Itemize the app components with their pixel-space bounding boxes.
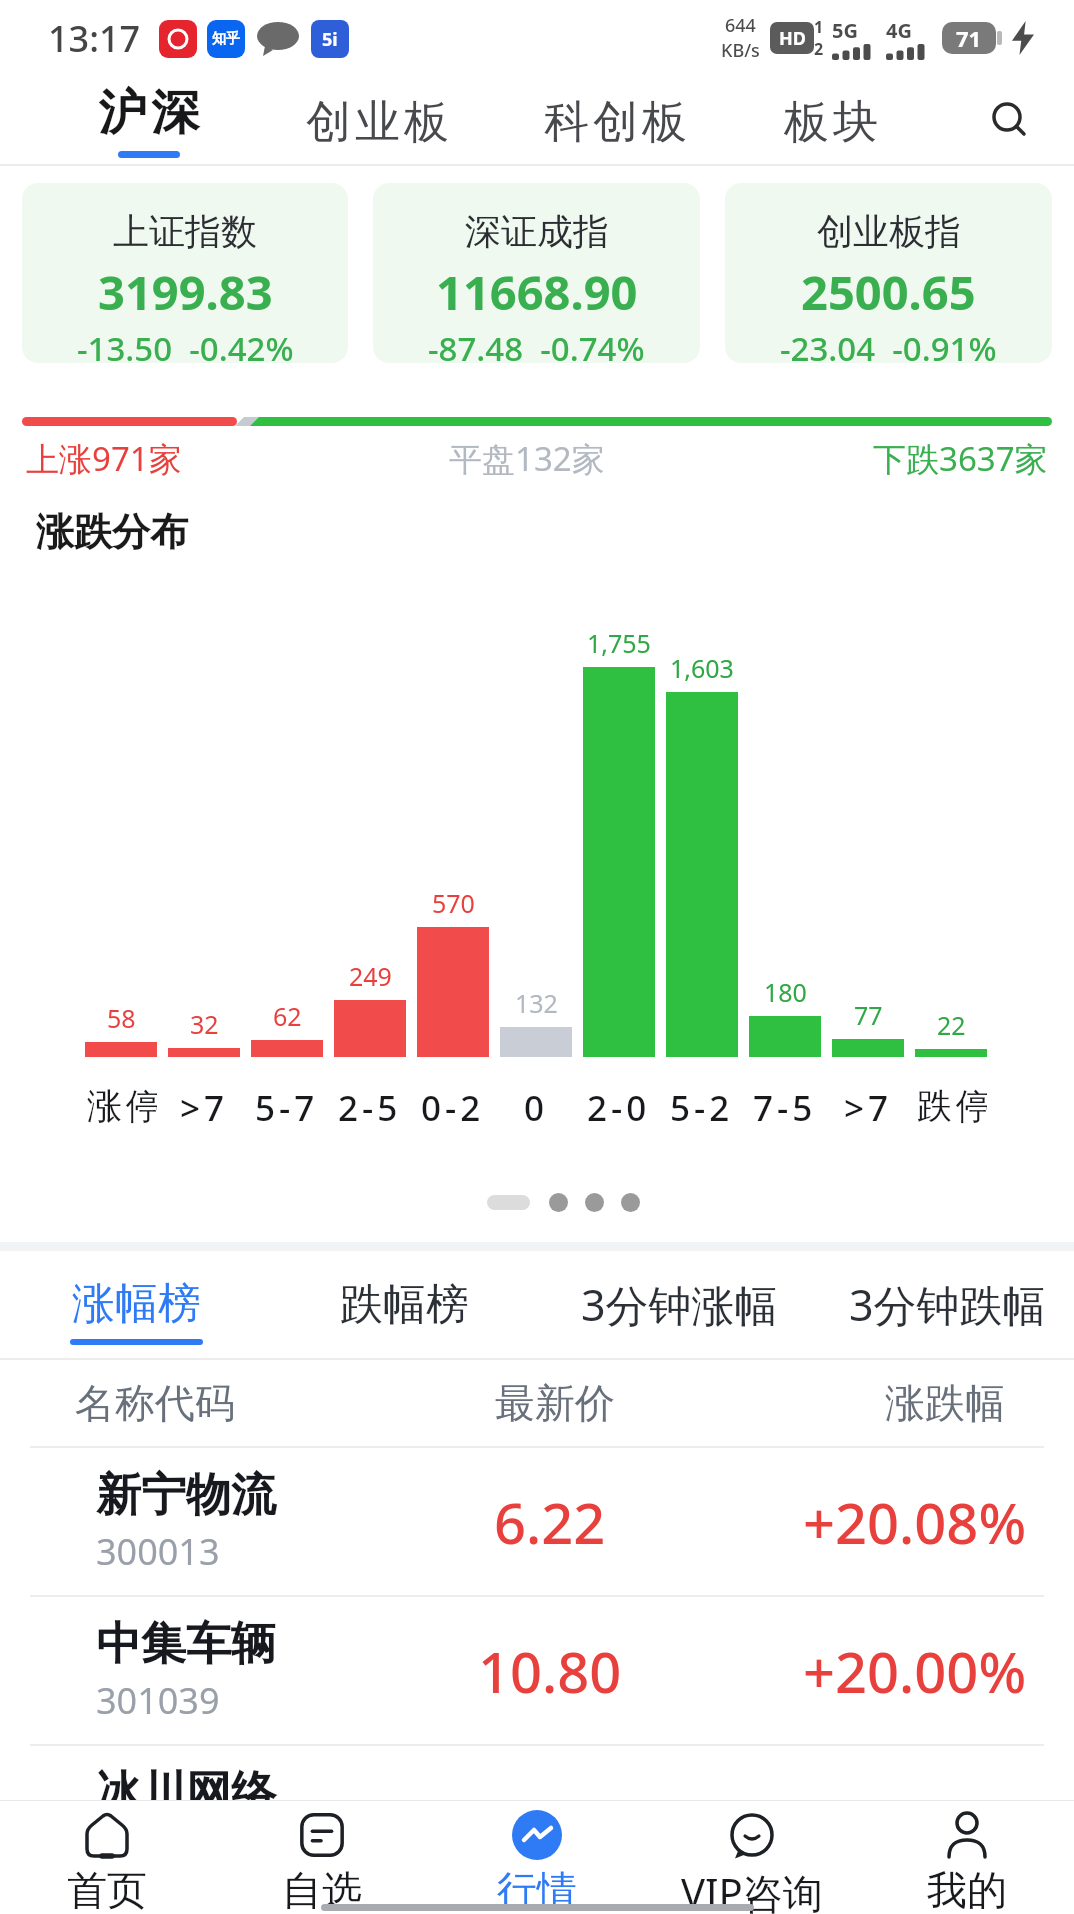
button[interactable]: 涨幅榜	[70, 1265, 203, 1345]
staticText: 冰川网络	[96, 1765, 276, 1822]
button[interactable]: 中集车辆	[0, 1597, 1074, 1744]
staticText: -23.04 -0.91%	[780, 326, 997, 363]
staticText: 我的	[927, 1865, 1007, 1914]
staticText: 300013	[96, 1527, 220, 1576]
staticText: 深证成指	[465, 209, 609, 254]
staticText: 首页	[67, 1865, 147, 1914]
staticText: 沪深	[96, 83, 202, 143]
staticText: 5-7	[255, 1084, 319, 1132]
staticText: 1	[814, 16, 824, 38]
staticText: 平盘132家	[449, 436, 605, 481]
staticText: 2-5	[338, 1084, 402, 1132]
staticText: 71	[956, 23, 982, 53]
staticText: 上证指数	[113, 209, 257, 254]
staticText: 知乎	[212, 30, 240, 48]
staticText: 涨跌分布	[36, 508, 188, 556]
staticText: 32	[190, 1007, 219, 1041]
staticText: 58	[107, 1001, 136, 1035]
staticText: 4G	[886, 17, 912, 44]
staticText: 下跌3637家	[873, 436, 1048, 481]
button[interactable]: VIP咨询	[644, 1801, 859, 1914]
staticText: 中集车辆	[96, 1616, 276, 1673]
staticText: 最新价	[495, 1378, 615, 1428]
staticText: 25.10	[478, 1808, 622, 1884]
staticText: 跌停	[915, 1084, 987, 1128]
staticText: 2500.65	[801, 260, 976, 324]
staticText: 上涨971家	[26, 436, 182, 481]
staticText: 3199.83	[98, 260, 273, 324]
staticText: +20.08%	[803, 1484, 1027, 1560]
button[interactable]: 板块	[782, 90, 880, 151]
button[interactable]: 冰川网络	[0, 1746, 1074, 1893]
staticText: 11668.90	[436, 260, 638, 324]
button[interactable]	[986, 96, 1034, 144]
staticText: 0	[524, 1084, 549, 1132]
button[interactable]: 新宁物流	[0, 1448, 1074, 1595]
button[interactable]: 我的	[859, 1801, 1074, 1914]
staticText: 行情	[497, 1865, 577, 1914]
staticText: >7	[180, 1084, 229, 1132]
staticText: 涨幅榜	[72, 1277, 201, 1331]
button[interactable]: 创业板	[304, 90, 451, 151]
button[interactable]: 首页	[0, 1801, 214, 1914]
staticText: 创业板指	[817, 209, 961, 254]
staticText: 5G	[832, 17, 858, 44]
staticText: >7	[844, 1084, 893, 1132]
staticText: 132	[515, 986, 558, 1020]
staticText: 名称代码	[75, 1378, 235, 1428]
staticText: 570	[432, 886, 475, 920]
button[interactable]: 上证指数	[22, 183, 348, 363]
button[interactable]: 沪深	[96, 83, 202, 158]
staticText: 77	[854, 998, 883, 1032]
button[interactable]: 3分钟涨幅	[581, 1275, 778, 1334]
staticText: 涨停	[85, 1084, 157, 1128]
staticText: 2	[814, 38, 824, 60]
button[interactable]: 行情	[429, 1801, 644, 1914]
staticText: KB/s	[721, 38, 760, 63]
staticText: +20.00%	[803, 1633, 1027, 1709]
staticText: -13.50 -0.42%	[77, 326, 294, 363]
staticText: HD	[779, 26, 806, 51]
staticText: 2-0	[587, 1084, 651, 1132]
staticText: 6.22	[494, 1484, 606, 1560]
staticText: +20.00%	[803, 1808, 1027, 1884]
button[interactable]: 自选	[214, 1801, 429, 1914]
staticText: 644	[725, 13, 756, 38]
staticText: 62	[273, 999, 302, 1033]
staticText: -87.48 -0.74%	[428, 326, 645, 363]
staticText: 300533	[96, 1825, 220, 1874]
staticText: 249	[349, 959, 392, 993]
button[interactable]: 科创板	[542, 90, 689, 151]
staticText: 301039	[96, 1676, 220, 1725]
staticText: 13:17	[48, 14, 141, 63]
button[interactable]: 深证成指	[373, 183, 700, 363]
staticText: 自选	[282, 1865, 362, 1914]
staticText: 新宁物流	[96, 1467, 276, 1524]
staticText: 7-5	[753, 1084, 817, 1132]
staticText: 0-2	[421, 1084, 485, 1132]
staticText: 1,755	[587, 626, 651, 660]
staticText: 180	[764, 975, 807, 1009]
staticText: 10.80	[478, 1633, 622, 1709]
staticText: 5i	[322, 27, 338, 52]
button[interactable]: 3分钟跌幅	[849, 1275, 1046, 1334]
button[interactable]: 创业板指	[725, 183, 1052, 363]
button[interactable]: 跌幅榜	[340, 1278, 469, 1332]
staticText: 5-2	[670, 1084, 734, 1132]
staticText: VIP咨询	[681, 1865, 823, 1914]
staticText: 22	[937, 1008, 966, 1042]
staticText: 涨跌幅	[885, 1378, 1005, 1428]
staticText: 1,603	[670, 651, 734, 685]
